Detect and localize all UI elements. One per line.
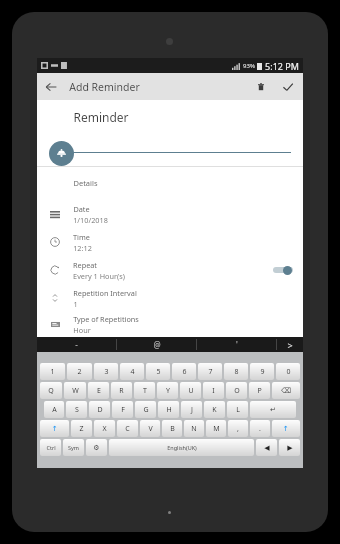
- button[interactable]: Delete: [247, 73, 274, 100]
- staticText: 0: [286, 367, 291, 377]
- staticText: ': [236, 339, 238, 350]
- button[interactable]: Z: [71, 420, 92, 437]
- button[interactable]: Q: [40, 382, 62, 399]
- button[interactable]: ': [197, 337, 276, 352]
- button[interactable]: Sym: [63, 439, 84, 456]
- button[interactable]: R: [111, 382, 132, 399]
- button[interactable]: K: [204, 401, 225, 418]
- staticText: Z: [79, 424, 84, 434]
- staticText: 9: [260, 367, 265, 377]
- staticText: L: [236, 405, 240, 415]
- staticText: Date: [73, 204, 90, 214]
- button[interactable]: H: [158, 401, 179, 418]
- button[interactable]: L: [227, 401, 248, 418]
- button[interactable]: E: [88, 382, 109, 399]
- button[interactable]: Type of Repetitions: [37, 312, 303, 337]
- staticText: 5:12 PM: [265, 60, 299, 72]
- staticText: M: [213, 424, 220, 434]
- staticText: ▶: [287, 444, 293, 452]
- staticText: Q: [48, 386, 54, 396]
- staticText: Repetition Interval: [73, 288, 137, 298]
- button[interactable]: P: [249, 382, 270, 399]
- staticText: 1: [50, 367, 55, 377]
- staticText: T: [143, 386, 147, 396]
- button[interactable]: -: [37, 337, 116, 352]
- staticText: A: [52, 405, 57, 415]
- staticText: ↑: [283, 425, 289, 433]
- staticText: ⚙: [93, 444, 100, 452]
- staticText: Sym: [68, 444, 79, 451]
- button[interactable]: U: [180, 382, 201, 399]
- staticText: H: [166, 405, 172, 415]
- button[interactable]: 4: [120, 363, 144, 380]
- staticText: E: [97, 386, 101, 396]
- staticText: Time: [73, 232, 90, 242]
- button[interactable]: X: [94, 420, 115, 437]
- staticText: ,: [237, 424, 239, 434]
- button[interactable]: Back: [37, 73, 64, 100]
- button[interactable]: F: [112, 401, 133, 418]
- button[interactable]: ↑: [40, 420, 69, 437]
- button[interactable]: ↵: [250, 401, 296, 418]
- staticText: N: [191, 424, 197, 434]
- button[interactable]: ,: [228, 420, 248, 437]
- staticText: D: [97, 405, 103, 415]
- button[interactable]: More suggestions: [277, 337, 303, 352]
- button[interactable]: Repetition Interval: [37, 284, 303, 312]
- staticText: Add Reminder: [69, 80, 140, 94]
- button[interactable]: V: [140, 420, 160, 437]
- button[interactable]: S: [66, 401, 87, 418]
- button[interactable]: W: [64, 382, 86, 399]
- button[interactable]: 1: [40, 363, 65, 380]
- staticText: ↑: [52, 425, 58, 433]
- staticText: 5: [156, 367, 161, 377]
- button[interactable]: Save: [274, 73, 301, 100]
- staticText: Ctrl: [46, 444, 56, 451]
- button[interactable]: English(UK): [109, 439, 254, 456]
- button[interactable]: 0: [276, 363, 300, 380]
- staticText: 2: [77, 367, 82, 377]
- button[interactable]: 5: [146, 363, 170, 380]
- button[interactable]: O: [226, 382, 247, 399]
- button[interactable]: T: [134, 382, 155, 399]
- button[interactable]: I: [203, 382, 224, 399]
- button[interactable]: 7: [198, 363, 222, 380]
- button[interactable]: N: [184, 420, 204, 437]
- button[interactable]: 6: [172, 363, 196, 380]
- button[interactable]: ⚙: [86, 439, 107, 456]
- staticText: I: [212, 386, 215, 396]
- button[interactable]: C: [117, 420, 138, 437]
- button[interactable]: D: [89, 401, 110, 418]
- button[interactable]: ⌫: [272, 382, 300, 399]
- staticText: Reminder: [73, 109, 129, 125]
- button[interactable]: Repeat toggle: [273, 265, 293, 275]
- button[interactable]: J: [181, 401, 202, 418]
- button[interactable]: Details: [37, 174, 303, 192]
- staticText: Y: [166, 386, 170, 396]
- button[interactable]: 2: [67, 363, 92, 380]
- staticText: ◀: [264, 444, 270, 452]
- button[interactable]: B: [162, 420, 182, 437]
- staticText: -: [75, 339, 78, 350]
- staticText: P: [257, 386, 262, 396]
- button[interactable]: Y: [157, 382, 178, 399]
- button[interactable]: 9: [250, 363, 274, 380]
- staticText: R: [119, 386, 124, 396]
- button[interactable]: .: [250, 420, 270, 437]
- button[interactable]: @: [117, 337, 196, 352]
- button[interactable]: M: [206, 420, 226, 437]
- button[interactable]: Date: [37, 200, 303, 228]
- button[interactable]: Repeat: [37, 256, 303, 284]
- button[interactable]: ↑: [272, 420, 300, 437]
- button[interactable]: Ctrl: [40, 439, 61, 456]
- button[interactable]: ◀: [256, 439, 277, 456]
- button[interactable]: ▶: [279, 439, 300, 456]
- button[interactable]: Reminder icon: [49, 141, 74, 166]
- staticText: C: [125, 424, 130, 434]
- button[interactable]: A: [44, 401, 64, 418]
- button[interactable]: 8: [224, 363, 248, 380]
- button[interactable]: 3: [94, 363, 118, 380]
- button[interactable]: G: [135, 401, 156, 418]
- staticText: 1/10/2018: [73, 215, 108, 225]
- button[interactable]: Time: [37, 228, 303, 256]
